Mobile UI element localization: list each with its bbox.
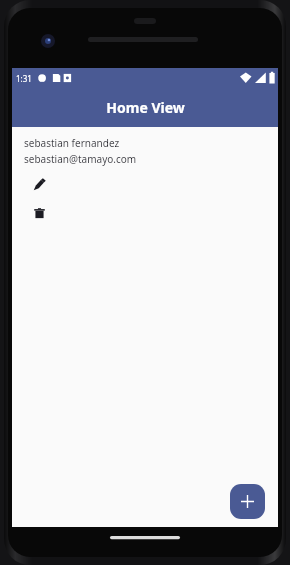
- button[interactable]: Add: [230, 484, 265, 519]
- staticText: 1:31: [16, 73, 32, 84]
- button[interactable]: Delete: [30, 204, 48, 222]
- staticText: sebastian fernandez: [24, 136, 120, 150]
- staticText: sebastian@tamayo.com: [24, 152, 137, 166]
- staticText: Home View: [106, 98, 185, 117]
- button[interactable]: Edit: [30, 175, 48, 193]
